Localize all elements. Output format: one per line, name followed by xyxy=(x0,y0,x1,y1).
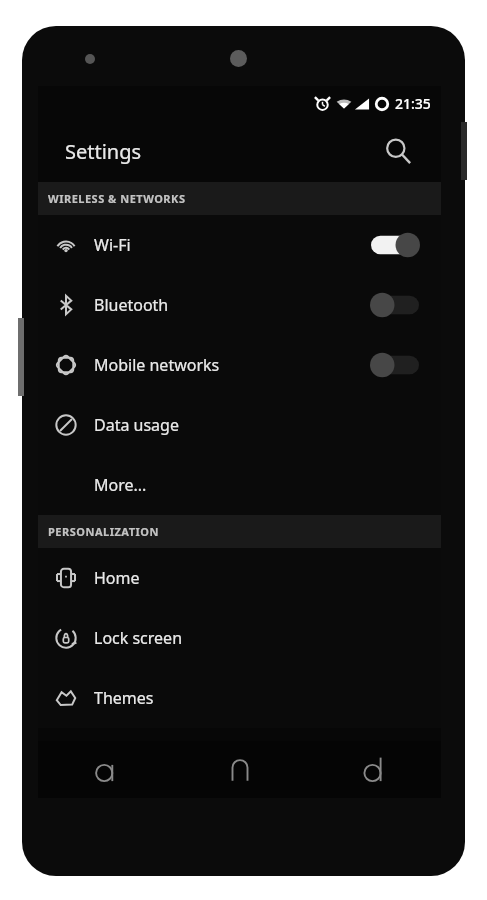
staticText: Bluetooth xyxy=(94,294,169,316)
staticText: Data usage xyxy=(94,414,179,436)
button[interactable]: Home xyxy=(173,741,307,798)
staticText: WIRELESS & NETWORKS xyxy=(48,191,186,206)
button[interactable]: Search xyxy=(375,128,421,174)
button[interactable]: Recent apps xyxy=(307,741,441,798)
staticText: Settings xyxy=(65,138,142,165)
staticText: Home xyxy=(94,567,140,589)
staticText: Mobile networks xyxy=(94,354,220,376)
button[interactable]: Data usage xyxy=(38,395,441,455)
button[interactable]: Wi-Fi xyxy=(38,215,441,275)
button[interactable]: Mobile networks xyxy=(38,335,441,395)
button[interactable]: Themes xyxy=(38,668,441,728)
button[interactable]: Bluetooth switch xyxy=(369,288,421,322)
button[interactable]: Wi-Fi switch xyxy=(369,228,421,262)
button[interactable]: More... xyxy=(38,455,441,515)
staticText: PERSONALIZATION xyxy=(48,524,159,539)
staticText: 21:35 xyxy=(395,94,431,113)
button[interactable]: Bluetooth xyxy=(38,275,441,335)
button[interactable]: Lock screen xyxy=(38,608,441,668)
staticText: Lock screen xyxy=(94,627,183,649)
button[interactable]: Home xyxy=(38,548,441,608)
staticText: Wi-Fi xyxy=(94,234,131,256)
button[interactable]: Back xyxy=(38,741,173,798)
staticText: More... xyxy=(94,474,147,496)
button[interactable]: Mobile networks switch xyxy=(369,348,421,382)
staticText: Themes xyxy=(94,687,154,709)
